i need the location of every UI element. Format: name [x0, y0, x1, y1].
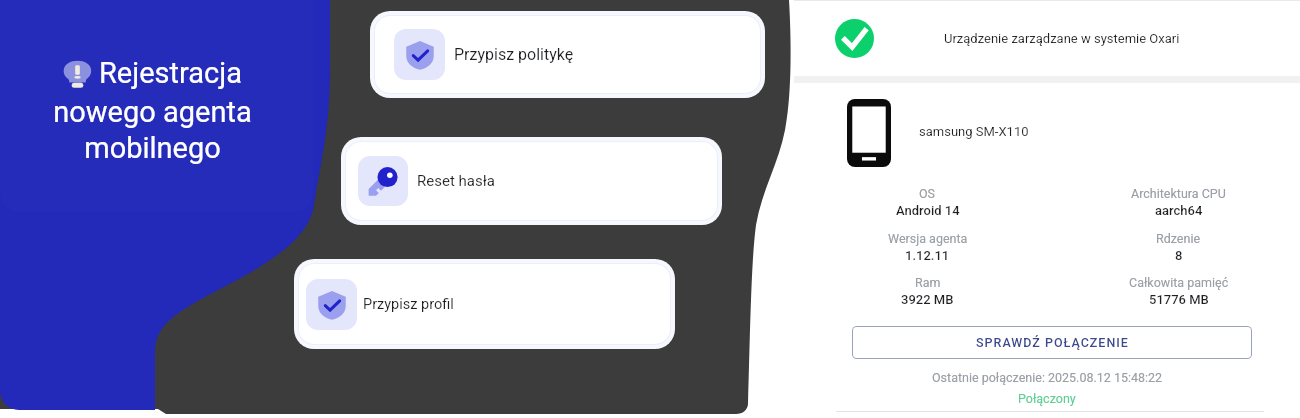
staticText: 51776 MB: [1149, 292, 1209, 307]
staticText: Całkowita pamięć: [1129, 275, 1229, 290]
staticText: Urządzenie zarządzane w systemie Oxari: [944, 31, 1180, 46]
staticText: Architektura CPU: [1131, 186, 1226, 201]
staticText: Przypisz profil: [363, 296, 454, 313]
staticText: Ram: [915, 275, 941, 290]
staticText: Reset hasła: [417, 172, 495, 190]
button[interactable]: Reset hasła: [341, 137, 722, 225]
button[interactable]: Przypisz profil: [294, 259, 675, 349]
staticText: Wersja agenta: [888, 231, 968, 246]
staticText: 8: [1175, 248, 1183, 263]
staticText: Rdzenie: [1156, 231, 1201, 246]
staticText: nowego agenta mobilnego: [53, 95, 252, 165]
staticText: 3922 MB: [901, 292, 954, 307]
staticText: Przypisz politykę: [454, 45, 574, 64]
staticText: OS: [919, 186, 936, 201]
staticText: Połączony: [1018, 391, 1076, 406]
staticText: Rejestracja: [99, 56, 242, 90]
staticText: 1.12.11: [905, 248, 950, 263]
staticText: Ostatnie połączenie: 2025.08.12 15:48:22: [932, 370, 1163, 385]
button[interactable]: Przypisz politykę: [370, 11, 765, 98]
staticText: samsung SM-X110: [919, 124, 1029, 139]
staticText: aarch64: [1155, 203, 1203, 218]
button[interactable]: SPRAWDŹ POŁĄCZENIE: [852, 326, 1252, 359]
staticText: SPRAWDŹ POŁĄCZENIE: [976, 335, 1129, 350]
staticText: Android 14: [896, 203, 960, 218]
